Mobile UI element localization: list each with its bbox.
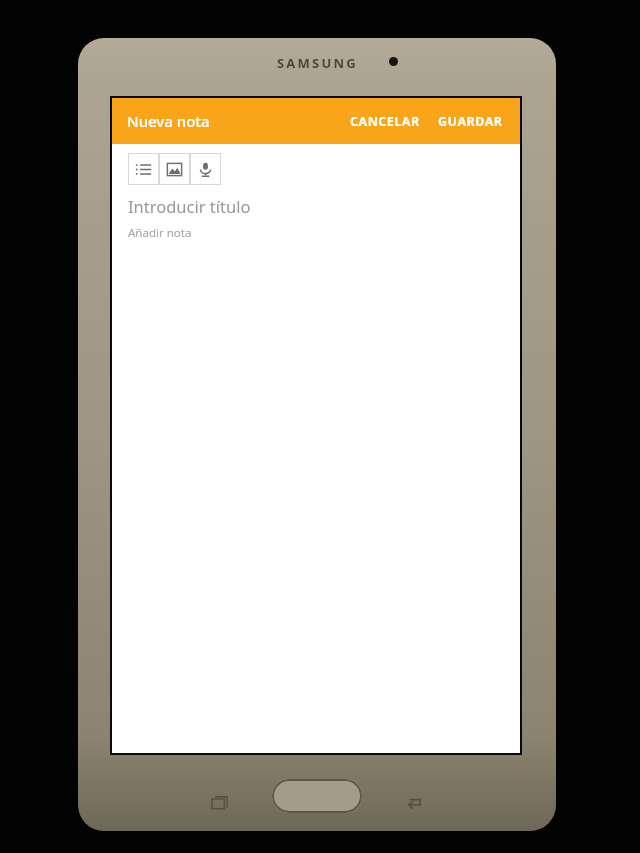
staticText: GUARDAR [438,113,503,130]
button[interactable]: Back [391,780,437,826]
button[interactable]: Home [272,779,362,813]
button[interactable]: GUARDAR [429,105,520,138]
button[interactable]: CANCELAR [341,105,429,138]
staticText: Nueva nota [127,111,210,131]
button[interactable]: Voice recording [190,153,221,185]
button[interactable]: Insert image [159,153,190,185]
staticText: CANCELAR [350,113,420,130]
staticText: Añadir nota [128,225,192,241]
button[interactable]: Recents [197,780,243,826]
button[interactable]: Checklist [128,153,159,185]
staticText: SAMSUNG [277,54,358,72]
staticText: Introducir título [128,195,251,217]
